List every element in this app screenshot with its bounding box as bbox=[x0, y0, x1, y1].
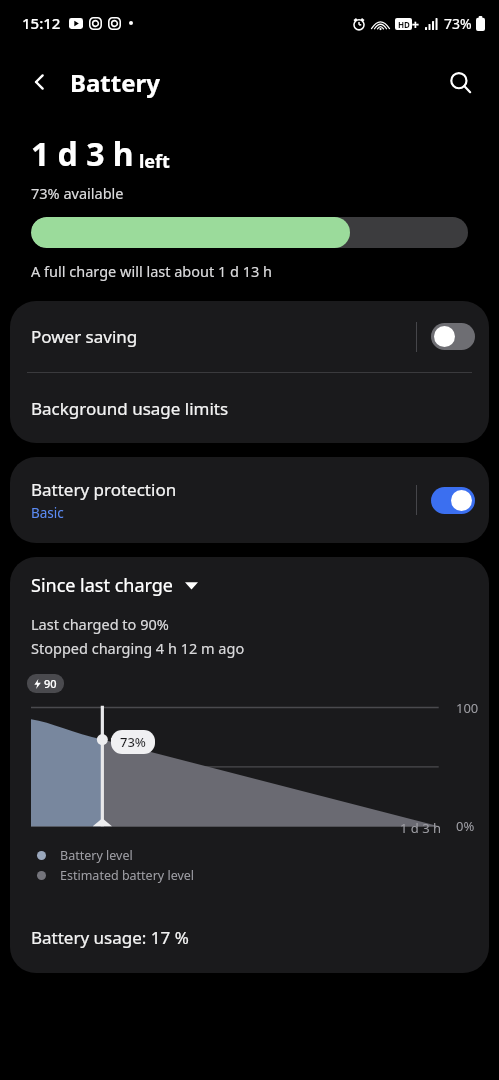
staticText: 0% bbox=[456, 817, 475, 835]
staticText: Basic bbox=[31, 504, 64, 522]
staticText: Power saving bbox=[31, 325, 416, 348]
button[interactable]: Since last charge bbox=[31, 573, 198, 598]
staticText: Estimated battery level bbox=[60, 867, 195, 884]
staticText: Battery level bbox=[60, 847, 133, 864]
staticText: Stopped charging 4 h 12 m ago bbox=[31, 638, 245, 658]
staticText: 73% bbox=[120, 733, 146, 751]
staticText: Last charged to 90% bbox=[31, 614, 169, 634]
staticText: 1 d 3 h bbox=[31, 132, 134, 176]
button[interactable]: Search bbox=[437, 59, 483, 105]
staticText: HD bbox=[398, 19, 410, 30]
staticText: 15:12 bbox=[22, 13, 61, 33]
staticText: 1 d 3 h bbox=[400, 819, 442, 837]
button[interactable]: Background usage limits bbox=[10, 373, 489, 443]
button[interactable]: Back bbox=[18, 60, 62, 104]
staticText: 90 bbox=[44, 676, 57, 691]
button[interactable]: Power saving toggle bbox=[431, 323, 475, 350]
staticText: 100 bbox=[456, 699, 479, 717]
staticText: 73% bbox=[444, 14, 472, 33]
staticText: Background usage limits bbox=[31, 397, 229, 420]
staticText: Since last charge bbox=[31, 573, 174, 598]
button[interactable]: Power saving bbox=[10, 301, 489, 372]
staticText: 73% available bbox=[31, 183, 124, 203]
button[interactable]: Battery protection toggle bbox=[431, 487, 475, 514]
button[interactable]: Battery protection bbox=[10, 457, 489, 543]
staticText: Battery usage: 17 % bbox=[31, 926, 189, 949]
staticText: left bbox=[139, 149, 170, 174]
staticText: Battery protection bbox=[31, 478, 177, 501]
staticText: Battery bbox=[70, 66, 160, 99]
staticText: + bbox=[412, 16, 419, 32]
staticText: A full charge will last about 1 d 13 h bbox=[31, 261, 273, 281]
